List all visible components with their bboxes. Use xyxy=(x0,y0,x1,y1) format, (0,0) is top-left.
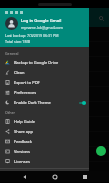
button[interactable] xyxy=(0,8,109,172)
button[interactable] xyxy=(0,27,109,41)
staticText: Export to PDF xyxy=(14,80,40,85)
staticText: Help Guide xyxy=(14,119,35,124)
button[interactable]: Licenses xyxy=(0,156,89,166)
button[interactable] xyxy=(0,132,109,146)
button[interactable] xyxy=(0,87,109,101)
staticText: General xyxy=(5,51,19,56)
staticText: Total size: 1MB xyxy=(5,39,31,44)
staticText: myname.lab@gmail.com xyxy=(21,25,63,30)
button[interactable] xyxy=(0,57,109,71)
button[interactable]: Enable Dark Theme xyxy=(0,97,89,107)
staticText: Backup to Google Drive xyxy=(14,60,59,65)
staticText: Share app xyxy=(14,129,33,134)
button[interactable]: Log in Google Gmail xyxy=(0,8,89,47)
button[interactable]: Share app xyxy=(0,126,89,136)
staticText: Feedback xyxy=(14,139,32,144)
button[interactable]: Search xyxy=(97,14,105,22)
button[interactable]: Feedback xyxy=(0,136,89,146)
button[interactable]: Compose xyxy=(96,146,106,156)
button[interactable]: Backup to Google Drive xyxy=(0,57,89,67)
staticText: Versions xyxy=(14,149,30,154)
staticText: Enable Dark Theme xyxy=(14,100,78,105)
staticText: Clean xyxy=(14,70,25,75)
button[interactable]: Back xyxy=(19,171,30,182)
button[interactable]: Recents xyxy=(79,171,90,182)
button[interactable] xyxy=(0,147,109,161)
staticText: Other xyxy=(5,110,16,115)
button[interactable]: Export to PDF xyxy=(0,77,89,87)
staticText: Preferences xyxy=(14,90,37,95)
button[interactable] xyxy=(0,42,109,56)
button[interactable] xyxy=(0,117,109,131)
staticText: Licenses xyxy=(14,159,30,164)
button[interactable]: Help Guide xyxy=(0,116,89,126)
button[interactable]: Home xyxy=(49,171,60,182)
button[interactable]: Preferences xyxy=(0,87,89,97)
button[interactable] xyxy=(0,72,109,86)
button[interactable] xyxy=(0,102,109,116)
button[interactable]: Clean xyxy=(0,67,89,77)
staticText: Log in Google Gmail xyxy=(21,18,62,24)
button[interactable]: Versions xyxy=(0,146,89,156)
staticText: Last backup: 7/3/2019 06:31 PM xyxy=(5,33,59,38)
